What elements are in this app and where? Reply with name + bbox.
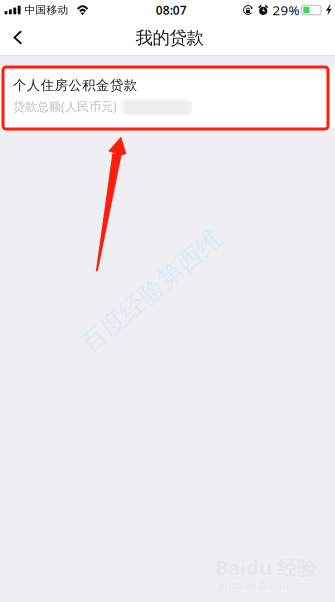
staticText: 中国移动 (25, 3, 69, 16)
staticText: 贷款总额(人民币元) (13, 98, 117, 114)
staticText: 29% (272, 1, 299, 19)
staticText: 我的贷款 (135, 27, 203, 49)
button[interactable]: Back (0, 20, 37, 55)
staticText: Baidu 经验 (215, 554, 317, 581)
staticText: 个人住房公积金贷款 (13, 77, 137, 93)
staticText: 08:07 (156, 2, 187, 18)
staticText: 百度经验第西维 (64, 276, 239, 307)
button[interactable]: 个人住房公积金贷款 (0, 66, 335, 127)
